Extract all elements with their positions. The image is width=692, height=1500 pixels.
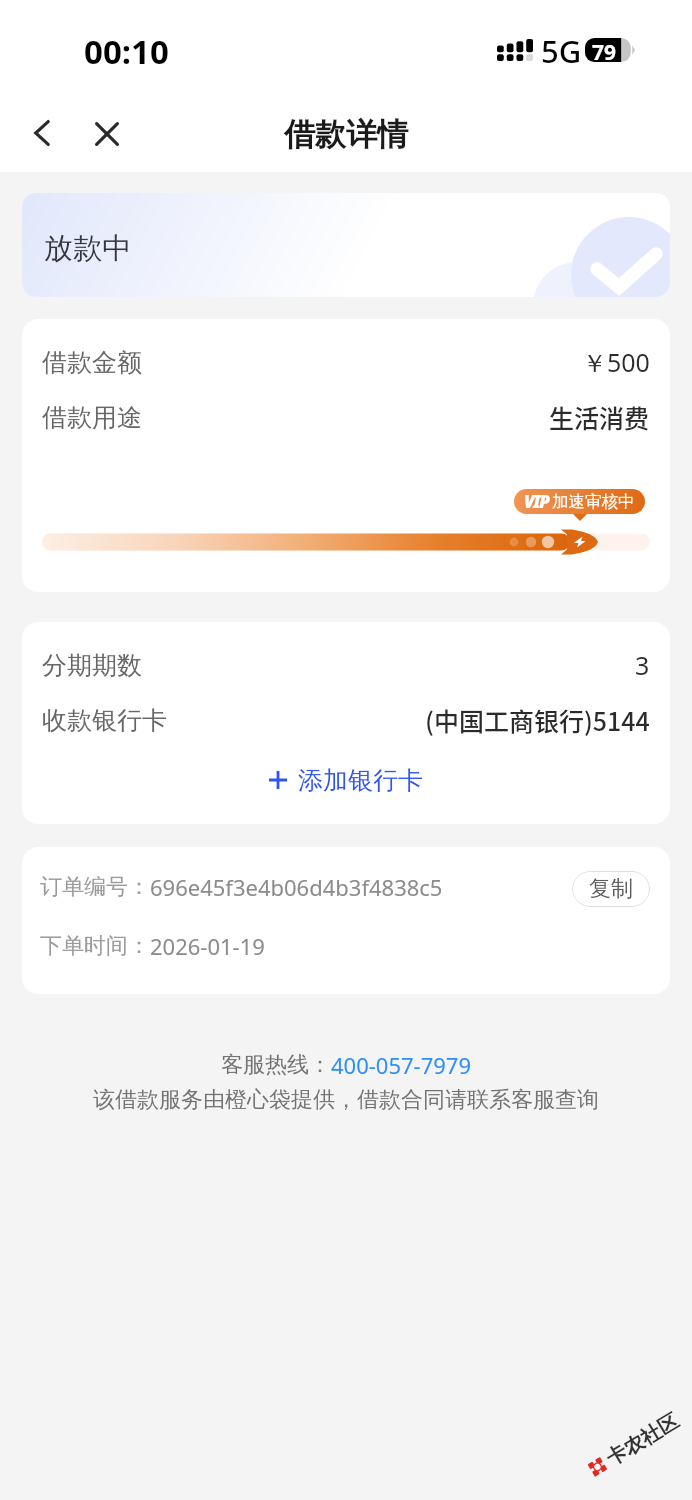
staticText: 放款中 — [44, 230, 131, 267]
button[interactable]: 400-057-7979 — [331, 1050, 472, 1080]
staticText: 复制 — [589, 875, 633, 903]
staticText: 该借款服务由橙心袋提供，借款合同请联系客服查询 — [93, 1086, 599, 1114]
staticText: 订单编号： — [40, 873, 150, 901]
staticText: 借款详情 — [284, 115, 408, 154]
staticText: 79 — [592, 38, 617, 62]
staticText: 00:10 — [84, 29, 169, 74]
staticText: 下单时间： — [40, 932, 150, 960]
staticText: 借款用途 — [42, 402, 142, 433]
staticText: 生活消费 — [549, 399, 650, 435]
staticText: VIP — [524, 490, 549, 513]
staticText: 添加银行卡 — [298, 765, 423, 796]
button[interactable]: 添加银行卡 — [22, 758, 670, 802]
staticText: ￥500 — [582, 345, 650, 379]
staticText: 客服热线： — [221, 1051, 331, 1079]
staticText: 696e45f3e4b06d4b3f4838c5 — [150, 872, 443, 902]
staticText: 5G — [541, 30, 582, 72]
staticText: 2026-01-19 — [150, 931, 265, 961]
staticText: 3 — [635, 648, 650, 682]
button[interactable]: Back — [13, 103, 73, 163]
staticText: 加速审核中 — [552, 491, 635, 512]
staticText: 卡农社区 — [602, 1408, 683, 1471]
staticText: (中国工商银行)5144 — [425, 702, 650, 738]
staticText: 收款银行卡 — [42, 705, 167, 736]
staticText: 分期期数 — [42, 650, 142, 681]
button[interactable]: 复制 — [572, 871, 650, 907]
button[interactable]: Close — [77, 104, 137, 164]
staticText: 借款金额 — [42, 347, 142, 378]
